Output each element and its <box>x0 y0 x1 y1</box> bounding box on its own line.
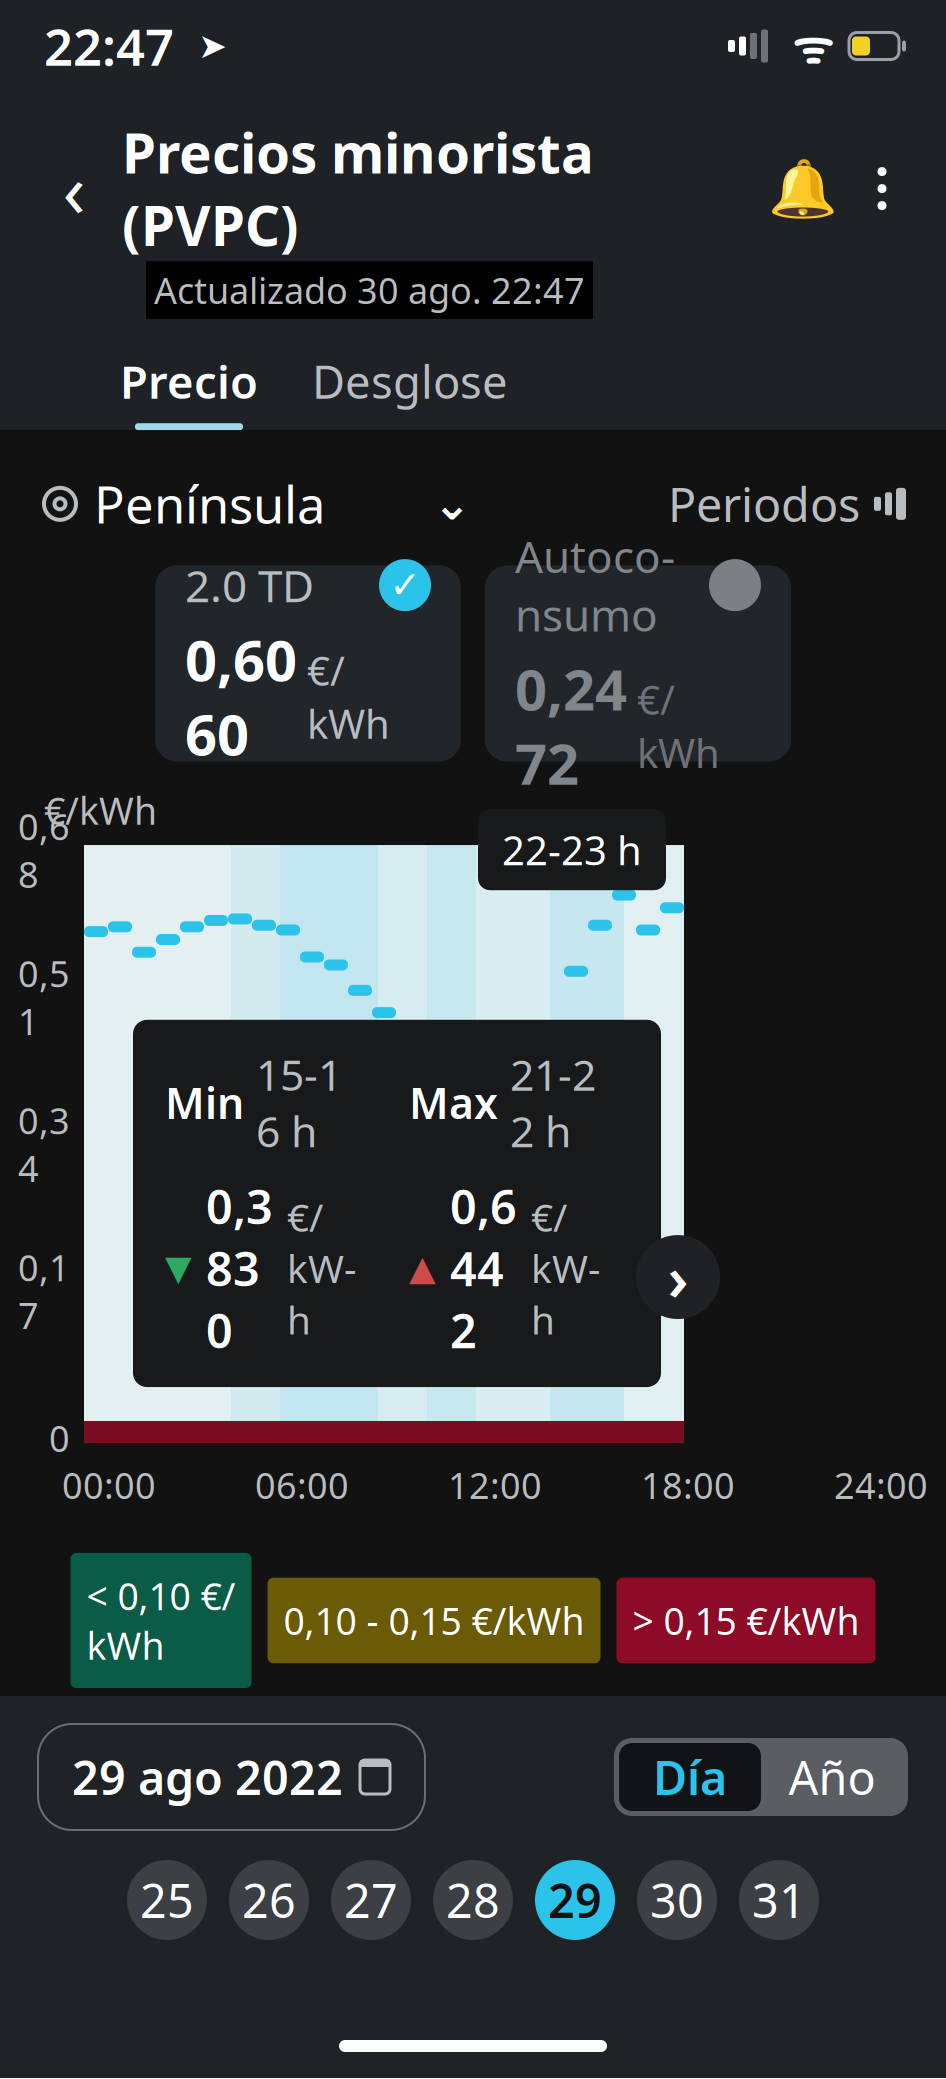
staticText: 24:00 <box>834 1461 928 1509</box>
button[interactable]: Día <box>619 1743 761 1811</box>
staticText: Día <box>653 1746 727 1808</box>
button[interactable]: Desglose <box>312 335 508 430</box>
button[interactable]: Península <box>42 470 471 537</box>
staticText: 22-23 h <box>502 823 642 876</box>
button[interactable]: Day 28 <box>433 1860 513 1940</box>
staticText: €/kWh <box>307 644 390 750</box>
staticText: ‹ <box>62 139 85 238</box>
staticText: 0,3830 <box>206 1175 273 1361</box>
staticText: Desglose <box>312 351 508 411</box>
staticText: 25 <box>140 1869 194 1931</box>
button[interactable]: Day 31 <box>739 1860 819 1940</box>
staticText: Actualizado 30 ago. 22:47 <box>154 266 585 314</box>
staticText: Año <box>788 1746 875 1808</box>
staticText: 27 <box>344 1869 398 1931</box>
staticText: 0,17 <box>18 1243 70 1339</box>
staticText: €/kWh <box>637 673 720 779</box>
staticText: 18:00 <box>641 1461 735 1509</box>
staticText: 12:00 <box>448 1461 542 1509</box>
staticText: 22:47 <box>44 12 174 80</box>
staticText: 🔔 <box>768 157 838 221</box>
staticText: Autoconsumo <box>515 527 675 644</box>
button[interactable]: More options <box>860 153 904 225</box>
button[interactable]: Day 29 <box>535 1860 615 1940</box>
staticText: ⌄ <box>433 478 471 530</box>
button[interactable]: Day 30 <box>637 1860 717 1940</box>
staticText: 0,68 <box>18 802 70 898</box>
staticText: 0,6060 <box>185 622 297 771</box>
staticText: 0,34 <box>18 1096 70 1192</box>
staticText: Península <box>94 470 325 537</box>
staticText: 0,2472 <box>515 651 627 800</box>
staticText: › <box>667 1236 688 1318</box>
staticText: > 0,15 €/kWh <box>632 1596 859 1645</box>
button[interactable]: Precio <box>120 335 258 430</box>
staticText: 06:00 <box>255 1461 349 1509</box>
button[interactable]: Next day <box>636 1235 720 1319</box>
staticText: ✓ <box>389 564 420 606</box>
button[interactable]: Day 26 <box>229 1860 309 1940</box>
staticText: 21-22 h <box>510 1046 596 1159</box>
button[interactable]: Day 27 <box>331 1860 411 1940</box>
button[interactable]: Back <box>38 153 110 225</box>
staticText: €/kWh <box>44 785 157 835</box>
staticText: Periodos <box>668 473 860 535</box>
button[interactable]: 29 ago 2022 <box>38 1724 425 1830</box>
staticText: Min <box>165 1074 244 1131</box>
staticText: ▲ <box>409 1248 436 1288</box>
staticText: 0,10 - 0,15 €/kWh <box>283 1596 584 1645</box>
staticText: 29 ago 2022 <box>72 1746 343 1808</box>
staticText: < 0,10 €/kWh <box>86 1571 235 1670</box>
button[interactable]: 2.0 TD <box>155 565 461 761</box>
staticText: 0,6442 <box>450 1175 517 1361</box>
staticText: 29 <box>548 1869 602 1931</box>
staticText: 0 <box>49 1414 70 1462</box>
staticText: 26 <box>242 1869 296 1931</box>
staticText: Precio <box>120 351 258 411</box>
staticText: 2.0 TD <box>185 556 314 614</box>
staticText: €/kWh <box>531 1191 600 1345</box>
button[interactable]: Day 25 <box>127 1860 207 1940</box>
staticText: Precios minorista (PVPC) <box>122 116 594 261</box>
staticText: €/kWh <box>287 1191 356 1345</box>
staticText: 28 <box>446 1869 500 1931</box>
staticText: 00:00 <box>62 1461 156 1509</box>
button[interactable]: Autoconsumo <box>485 565 791 761</box>
staticText: 0,51 <box>18 949 70 1045</box>
staticText: 15-16 h <box>256 1046 342 1159</box>
button[interactable]: Create price alert <box>772 153 834 225</box>
staticText: Max <box>409 1074 498 1131</box>
button[interactable]: Año <box>761 1743 903 1811</box>
staticText: 30 <box>650 1869 704 1931</box>
staticText: ▼ <box>165 1248 192 1288</box>
staticText: 31 <box>752 1869 806 1931</box>
staticText: ᯤ <box>768 16 833 76</box>
button[interactable]: Periodos <box>668 473 906 535</box>
staticText: ➤ <box>174 26 227 66</box>
